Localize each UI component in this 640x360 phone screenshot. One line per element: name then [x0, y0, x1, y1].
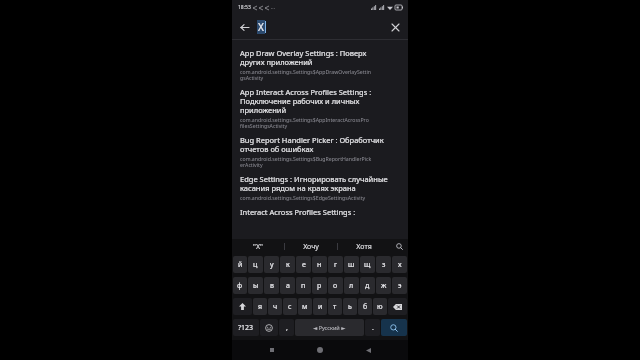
staticText: л	[349, 281, 354, 291]
staticText: Bug Report Handler Picker : Обработчик о…	[240, 135, 384, 154]
button[interactable]: л	[344, 277, 359, 294]
button[interactable]: ◄ Русский ►	[295, 319, 364, 336]
button[interactable]: Search suggestions	[390, 239, 408, 254]
button[interactable]: х	[392, 256, 407, 273]
button[interactable]: н	[312, 256, 327, 273]
button[interactable]: ?123	[233, 319, 259, 336]
staticText: ,	[286, 323, 288, 333]
button[interactable]: с	[283, 298, 297, 315]
button[interactable]: Clear	[386, 18, 404, 36]
staticText: ф	[237, 281, 243, 291]
staticText: м	[302, 302, 308, 312]
staticText: с	[288, 302, 292, 312]
staticText: Хотя	[356, 242, 372, 252]
staticText: ь	[348, 302, 352, 312]
button[interactable]: Recents	[264, 342, 280, 358]
button[interactable]: а	[280, 277, 295, 294]
staticText: я	[258, 302, 263, 312]
staticText: App Interact Across Profiles Settings : …	[240, 87, 372, 115]
button[interactable]: Search	[381, 319, 407, 336]
button[interactable]: Хотя	[337, 239, 390, 254]
button[interactable]: Хочу	[284, 239, 337, 254]
button[interactable]: о	[328, 277, 343, 294]
button[interactable]: р	[312, 277, 327, 294]
staticText: к	[286, 260, 290, 270]
button[interactable]: ч	[268, 298, 282, 315]
staticText: Edge Settings : Игнорировать случайные к…	[240, 174, 388, 193]
button[interactable]: Bug Report Handler Picker : Обработчик о…	[232, 132, 408, 171]
staticText: ц	[253, 260, 258, 270]
staticText: ч	[273, 302, 278, 312]
staticText: ы	[253, 281, 259, 291]
staticText: н	[317, 260, 322, 270]
button[interactable]: г	[328, 256, 343, 273]
button[interactable]: щ	[360, 256, 375, 273]
staticText: com.android.settings.Settings$EdgeSettin…	[240, 194, 366, 201]
button[interactable]: ш	[344, 256, 359, 273]
staticText: ...	[271, 4, 276, 11]
staticText: т	[333, 302, 337, 312]
button[interactable]: ж	[376, 277, 391, 294]
button[interactable]: з	[376, 256, 391, 273]
button[interactable]: б	[358, 298, 372, 315]
staticText: com.android.settings.Settings$AppDrawOve…	[240, 68, 371, 81]
staticText: б	[363, 302, 368, 312]
button[interactable]: у	[264, 256, 279, 273]
staticText: э	[398, 281, 402, 291]
staticText: Interact Across Profiles Settings :	[240, 207, 356, 217]
button[interactable]: App Interact Across Profiles Settings : …	[232, 84, 408, 132]
button[interactable]: ь	[343, 298, 357, 315]
staticText: ◄ Русский ►	[313, 324, 346, 331]
button[interactable]: м	[298, 298, 312, 315]
staticText: X	[258, 20, 264, 34]
button[interactable]: Backspace	[388, 298, 407, 315]
button[interactable]: т	[328, 298, 342, 315]
staticText: com.android.settings.Settings$AppInterac…	[240, 116, 369, 129]
button[interactable]: Shift	[233, 298, 252, 315]
staticText: г	[334, 260, 338, 270]
staticText: щ	[364, 260, 371, 270]
staticText: "X"	[253, 242, 263, 252]
staticText: п	[301, 281, 306, 291]
button[interactable]: Back	[235, 18, 253, 36]
button[interactable]: Back	[360, 342, 376, 358]
staticText: ?123	[238, 323, 254, 333]
button[interactable]: Interact Across Profiles Settings :	[232, 204, 408, 220]
staticText: а	[286, 281, 290, 291]
button[interactable]: к	[280, 256, 295, 273]
button[interactable]: App Draw Overlay Settings : Поверх други…	[232, 45, 408, 84]
staticText: з	[382, 260, 386, 270]
staticText: ж	[381, 281, 387, 291]
button[interactable]: д	[360, 277, 375, 294]
staticText: и	[318, 302, 323, 312]
staticText: е	[302, 260, 306, 270]
button[interactable]: е	[296, 256, 311, 273]
staticText: ш	[348, 260, 355, 270]
staticText: о	[333, 281, 338, 291]
staticText: д	[365, 281, 370, 291]
button[interactable]: ф	[233, 277, 247, 294]
staticText: com.android.settings.Settings$BugReportH…	[240, 155, 372, 168]
button[interactable]: .	[365, 319, 380, 336]
button[interactable]: ц	[248, 256, 263, 273]
button[interactable]: "X"	[232, 239, 284, 254]
button[interactable]: Edge Settings : Игнорировать случайные к…	[232, 171, 408, 204]
staticText: App Draw Overlay Settings : Поверх други…	[240, 48, 367, 67]
staticText: х	[398, 260, 402, 270]
button[interactable]: ,	[279, 319, 294, 336]
button[interactable]: Home	[312, 342, 328, 358]
button[interactable]: й	[233, 256, 247, 273]
button[interactable]: ю	[373, 298, 387, 315]
staticText: Хочу	[303, 242, 319, 252]
staticText: у	[270, 260, 274, 270]
staticText: 18:53	[238, 4, 251, 11]
button[interactable]: и	[313, 298, 327, 315]
button[interactable]: Emoji	[260, 319, 278, 336]
staticText: в	[270, 281, 274, 291]
button[interactable]: э	[392, 277, 407, 294]
staticText: й	[238, 260, 243, 270]
button[interactable]: п	[296, 277, 311, 294]
button[interactable]: я	[253, 298, 267, 315]
button[interactable]: ы	[248, 277, 263, 294]
button[interactable]: в	[264, 277, 279, 294]
